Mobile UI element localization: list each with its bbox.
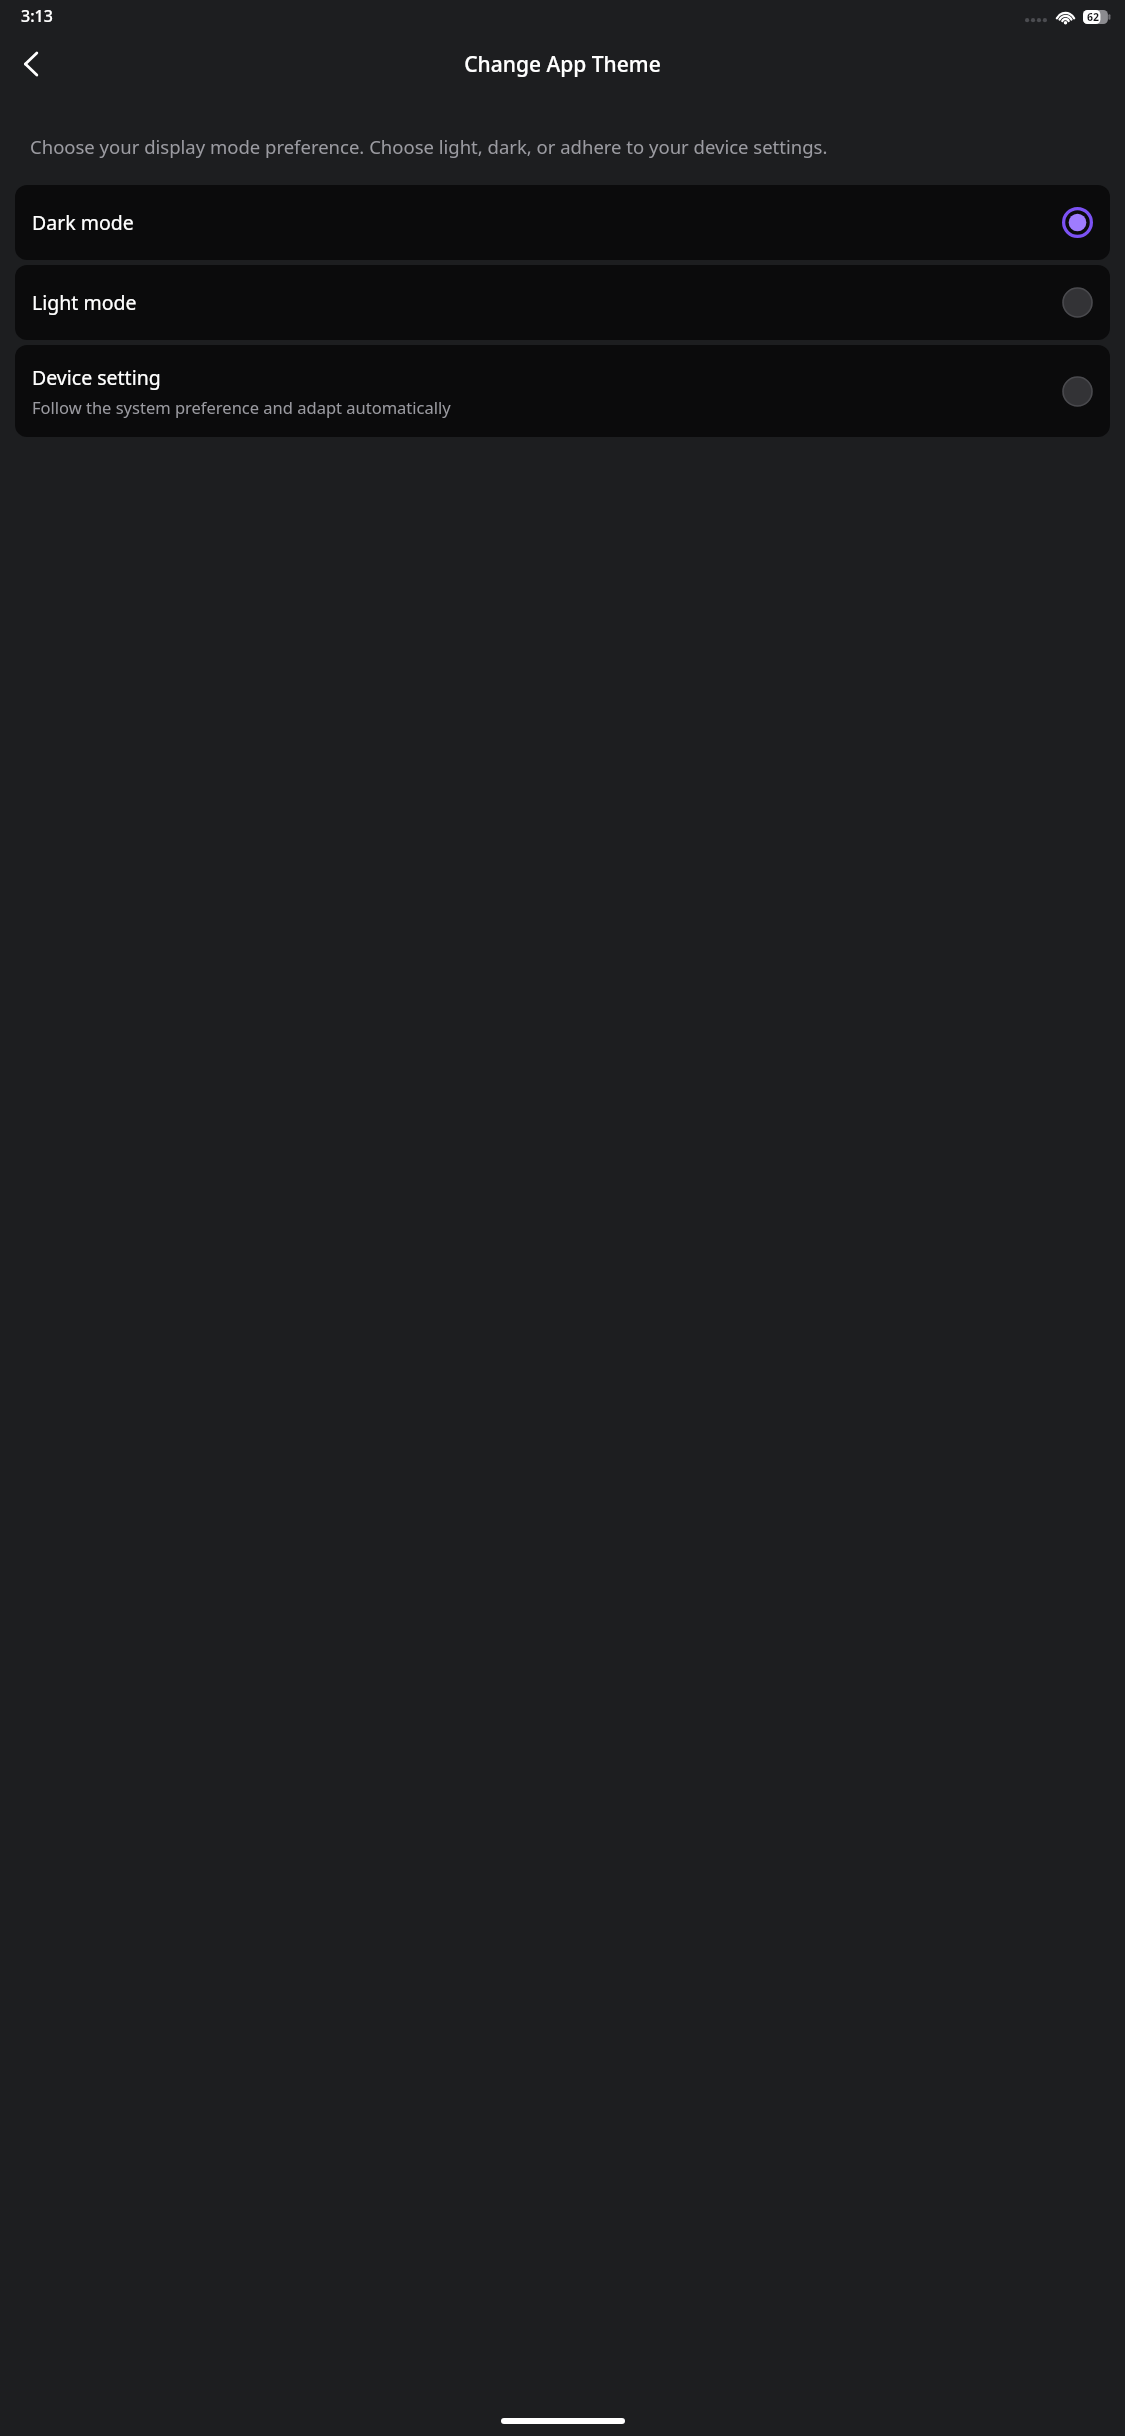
button[interactable]: Light mode (15, 265, 1110, 340)
staticText: Dark mode (32, 209, 134, 236)
staticText: Device setting (32, 364, 161, 391)
button[interactable]: Back (6, 38, 58, 90)
button[interactable]: Device setting (15, 345, 1110, 437)
button[interactable]: Dark mode (15, 185, 1110, 260)
staticText: 3:13 (21, 5, 53, 27)
staticText: Choose your display mode preference. Cho… (30, 134, 1095, 159)
staticText: Light mode (32, 289, 137, 316)
staticText: Follow the system preference and adapt a… (32, 396, 451, 418)
staticText: Change App Theme (464, 50, 661, 79)
staticText: 62 (1087, 10, 1100, 24)
